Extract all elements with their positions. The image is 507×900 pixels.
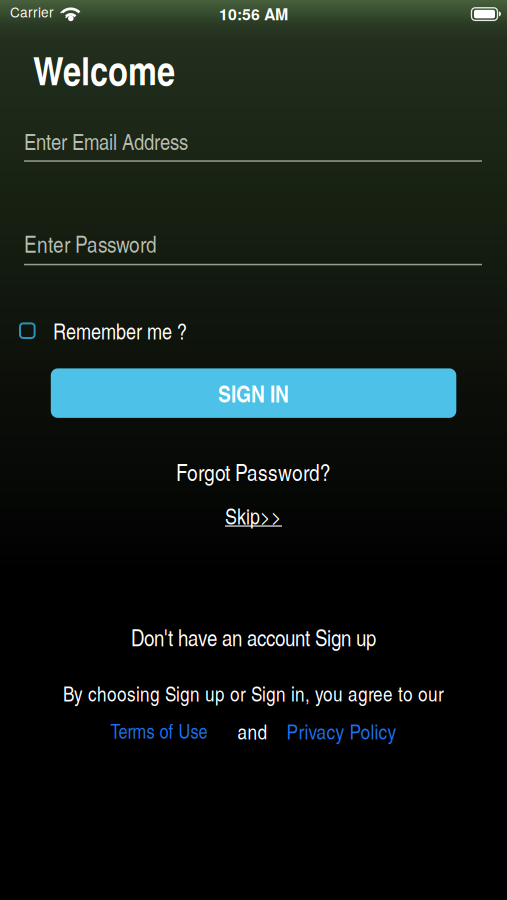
- button[interactable]: SIGN IN: [51, 368, 456, 418]
- staticText: Welcome: [33, 41, 175, 97]
- staticText: and: [238, 716, 268, 745]
- button[interactable]: Terms of Use: [110, 717, 207, 744]
- textField[interactable]: Enter Password: [24, 227, 482, 266]
- staticText: Privacy Policy: [286, 716, 396, 745]
- staticText: By choosing Sign up or Sign in, you agre…: [63, 679, 444, 707]
- staticText: Enter Email Address: [24, 125, 188, 156]
- staticText: Don't have an account Sign up: [131, 621, 376, 653]
- staticText: SIGN IN: [218, 377, 289, 410]
- staticText: Skip>>: [225, 500, 282, 531]
- staticText: Enter Password: [24, 227, 157, 259]
- staticText: 10:56 AM: [219, 2, 288, 25]
- staticText: Remember me ?: [53, 315, 187, 346]
- button[interactable]: Remember me ?: [20, 315, 187, 346]
- button[interactable]: Privacy Policy: [286, 716, 396, 745]
- textField[interactable]: Enter Email Address: [24, 125, 482, 162]
- staticText: Forgot Password?: [176, 456, 331, 487]
- button[interactable]: Forgot Password?: [176, 456, 331, 487]
- button[interactable]: Don't have an account Sign up: [131, 621, 376, 653]
- button[interactable]: Skip>>: [225, 500, 282, 531]
- staticText: Carrier: [10, 2, 54, 21]
- staticText: Terms of Use: [110, 717, 207, 744]
